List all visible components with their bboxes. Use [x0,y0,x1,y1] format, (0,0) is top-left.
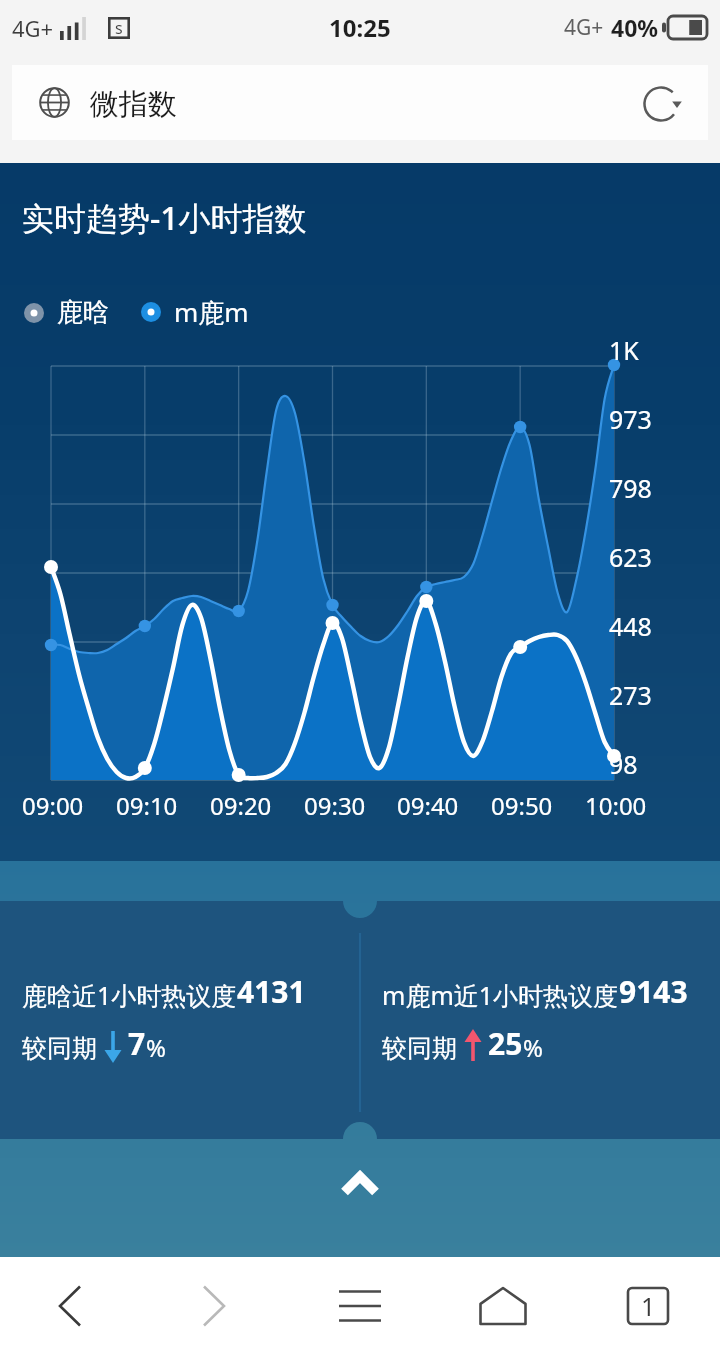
staticText: 25 [488,1023,523,1064]
staticText: 623 [609,540,652,574]
button[interactable]: Expand [0,1161,720,1223]
staticText: 09:00 [22,789,84,822]
staticText: 973 [609,402,652,436]
staticText: 实时趋势-1小时指数 [22,196,307,240]
staticText: % [523,1031,543,1064]
button[interactable]: Forward [176,1268,252,1344]
staticText: 鹿晗近1小时热议度 [22,978,237,1012]
staticText: 10:25 [329,11,391,44]
staticText: 09:50 [491,789,553,822]
button[interactable]: Menu [322,1268,398,1344]
button[interactable]: m鹿m [141,294,249,330]
staticText: m鹿m [174,294,249,330]
staticText: 较同期 [382,1033,457,1064]
staticText: s [115,17,123,39]
staticText: 1 [641,1289,656,1323]
button[interactable]: m鹿m近1小时热议度 [382,861,688,1064]
button[interactable]: 鹿晗近1小时热议度 [22,861,306,1064]
staticText: 09:40 [397,789,459,822]
staticText: 4G+ [12,13,54,43]
staticText: 448 [609,609,652,643]
staticText: 10:00 [585,789,647,822]
staticText: 273 [609,678,652,712]
staticText: 较同期 [22,1033,97,1064]
staticText: 09:20 [210,789,272,822]
staticText: % [146,1031,166,1064]
staticText: 09:30 [304,789,366,822]
button[interactable]: Refresh [631,74,691,134]
staticText: 09:10 [116,789,178,822]
button[interactable]: Back [32,1268,108,1344]
staticText: 4G+ [564,13,604,42]
staticText: 1K [609,333,639,367]
button[interactable]: Home [465,1268,541,1344]
staticText: 9143 [619,971,688,1012]
button[interactable]: 鹿晗 [24,296,109,329]
staticText: 7 [128,1023,146,1064]
button[interactable]: 微指数 [12,65,708,140]
staticText: 798 [609,471,652,505]
staticText: 鹿晗 [57,296,109,329]
staticText: 4131 [237,971,306,1012]
button[interactable]: Tabs [610,1268,686,1344]
staticText: 98 [609,747,638,781]
staticText: 40% [611,12,659,43]
staticText: 微指数 [90,86,177,123]
staticText: m鹿m近1小时热议度 [382,978,619,1012]
